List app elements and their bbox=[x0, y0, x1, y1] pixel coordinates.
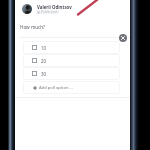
button[interactable]: Profile photo bbox=[22, 4, 32, 14]
staticText: Public post bbox=[41, 10, 58, 14]
button[interactable]: Public post bbox=[37, 10, 58, 14]
button[interactable]: 10 bbox=[23, 41, 120, 54]
staticText: 30 bbox=[41, 71, 47, 77]
button[interactable]: 20 bbox=[23, 54, 120, 67]
staticText: How much? bbox=[20, 24, 46, 30]
staticText: 10 bbox=[41, 45, 47, 51]
staticText: 20 bbox=[41, 58, 47, 64]
button[interactable]: 30 bbox=[23, 67, 120, 80]
staticText: Add poll option ... bbox=[39, 85, 73, 91]
button[interactable]: Add poll option ... bbox=[23, 81, 120, 94]
button[interactable]: Remove poll bbox=[119, 34, 127, 42]
button[interactable]: Valerii Odintsov bbox=[37, 4, 72, 10]
